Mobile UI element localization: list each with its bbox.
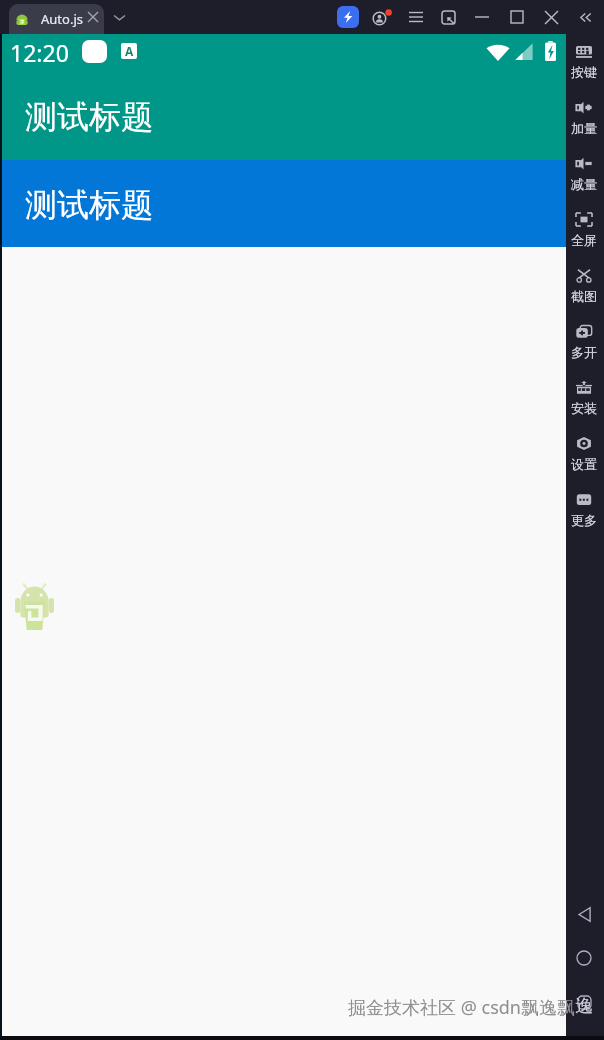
staticText: Auto.js	[41, 10, 83, 28]
button[interactable]: Close	[536, 0, 566, 34]
button[interactable]: Minimize	[467, 0, 497, 34]
button[interactable]: Back	[565, 892, 603, 936]
staticText: 加量	[571, 120, 597, 136]
button[interactable]: Collapse sidebar	[570, 0, 600, 34]
button[interactable]: Menu	[401, 0, 431, 34]
button[interactable]: 减量	[565, 146, 603, 202]
button[interactable]: Auto.js	[9, 4, 104, 34]
button[interactable]: Account	[366, 0, 396, 34]
button[interactable]: Accelerate	[333, 0, 363, 34]
button[interactable]: 截图	[565, 258, 603, 314]
button[interactable]: Restore window	[433, 0, 463, 34]
button[interactable]: 加量	[565, 90, 603, 146]
button[interactable]: Maximize	[502, 0, 532, 34]
staticText: A	[125, 43, 134, 59]
button[interactable]: Close tab	[82, 0, 103, 34]
button[interactable]: 多开	[565, 314, 603, 370]
staticText: 减量	[571, 176, 597, 192]
button[interactable]: 全屏	[565, 202, 603, 258]
button[interactable]: 安装	[565, 370, 603, 426]
staticText: 12:20	[10, 37, 69, 68]
staticText: 逸	[575, 995, 593, 1018]
button[interactable]: 设置	[565, 426, 603, 482]
staticText: 多开	[571, 344, 597, 360]
button[interactable]: Home	[565, 936, 603, 980]
button[interactable]: 更多	[565, 482, 603, 538]
staticText: 设置	[571, 456, 597, 472]
button[interactable]: 按键	[565, 34, 603, 90]
button[interactable]: Recents	[565, 980, 603, 1024]
staticText: 截图	[571, 288, 597, 304]
staticText: 更多	[571, 512, 597, 528]
staticText: 按键	[571, 64, 597, 80]
staticText: 全屏	[571, 232, 597, 248]
staticText: 安装	[571, 400, 597, 416]
staticText: 掘金技术社区 @ csdn飘逸飘	[348, 995, 575, 1020]
staticText: 测试标题	[25, 97, 153, 137]
staticText: 测试标题	[25, 185, 153, 225]
button[interactable]: More tabs	[108, 0, 131, 34]
